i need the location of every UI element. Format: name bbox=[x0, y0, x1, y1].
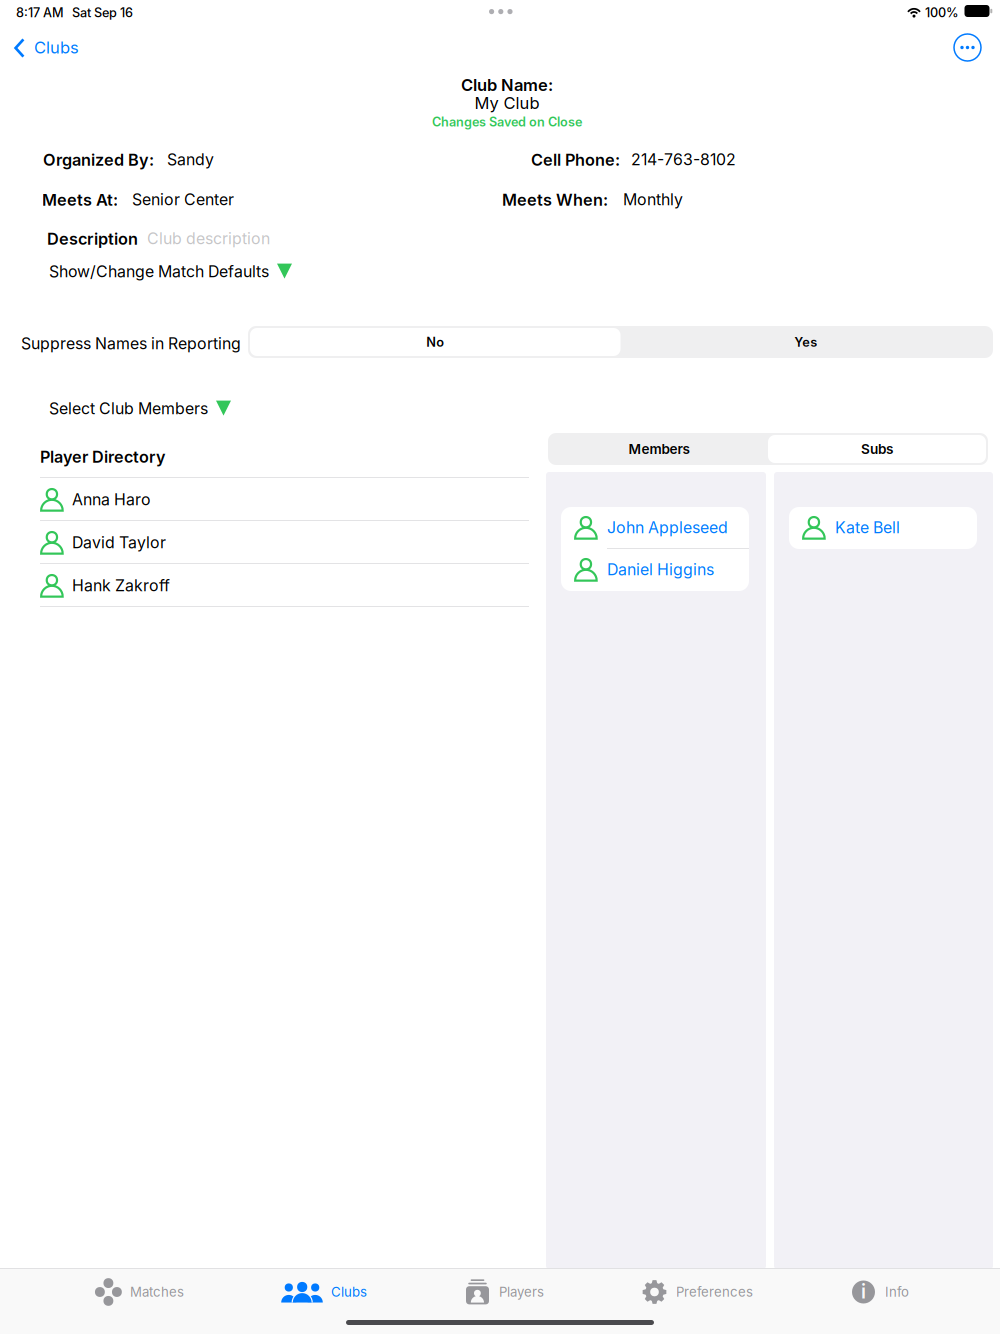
staticText: Player Directory bbox=[40, 447, 165, 466]
staticText: David Taylor bbox=[72, 533, 166, 552]
staticText: Club Name: bbox=[461, 75, 553, 95]
staticText: Show/Change Match Defaults bbox=[49, 262, 269, 281]
button[interactable]: John Appleseed bbox=[561, 507, 749, 549]
button[interactable]: Yes bbox=[620, 326, 991, 358]
staticText: Players bbox=[499, 1284, 544, 1300]
button[interactable]: i bbox=[850, 1274, 909, 1310]
button[interactable]: More options bbox=[953, 33, 982, 62]
staticText: John Appleseed bbox=[607, 518, 728, 537]
button[interactable]: David Taylor bbox=[40, 521, 529, 564]
button[interactable]: Kate Bell bbox=[789, 507, 977, 549]
staticText: Meets When: bbox=[502, 190, 608, 210]
staticText: Daniel Higgins bbox=[607, 560, 714, 579]
staticText: Cell Phone: bbox=[531, 150, 620, 170]
button[interactable]: Matches bbox=[95, 1274, 184, 1310]
staticText: Yes bbox=[794, 334, 817, 350]
staticText: Monthly bbox=[623, 190, 683, 209]
button[interactable]: Preferences bbox=[641, 1274, 753, 1310]
staticText: Clubs bbox=[331, 1284, 367, 1300]
staticText: 214-763-8102 bbox=[631, 150, 736, 169]
staticText: Suppress Names in Reporting bbox=[21, 334, 241, 353]
staticText: Subs bbox=[861, 441, 893, 457]
staticText: Club description bbox=[147, 229, 270, 248]
button[interactable]: Clubs bbox=[7, 33, 86, 63]
staticText: Info bbox=[885, 1284, 909, 1300]
staticText: No bbox=[426, 334, 444, 350]
staticText: Matches bbox=[130, 1284, 184, 1300]
staticText: Kate Bell bbox=[835, 518, 900, 537]
button[interactable]: Daniel Higgins bbox=[561, 549, 749, 591]
staticText: Meets At: bbox=[42, 190, 118, 210]
staticText: Organized By: bbox=[43, 150, 154, 170]
staticText: Hank Zakroff bbox=[72, 576, 170, 595]
staticText: i bbox=[861, 1280, 866, 1303]
staticText: Sat Sep 16 bbox=[72, 5, 133, 20]
button[interactable]: Clubs bbox=[281, 1274, 367, 1310]
staticText: Members bbox=[628, 441, 689, 457]
button[interactable]: Show/Change Match Defaults bbox=[42, 257, 299, 286]
staticText: 100% bbox=[925, 5, 959, 20]
staticText: Anna Haro bbox=[72, 490, 151, 509]
staticText: My Club bbox=[474, 93, 539, 113]
button[interactable]: Hank Zakroff bbox=[40, 564, 529, 607]
staticText: Sandy bbox=[167, 150, 214, 169]
button[interactable]: Players bbox=[464, 1274, 544, 1310]
staticText: Clubs bbox=[34, 37, 79, 57]
staticText: 8:17 AM bbox=[16, 5, 64, 20]
button[interactable]: Subs bbox=[768, 433, 986, 465]
staticText: Select Club Members bbox=[49, 399, 208, 418]
staticText: Preferences bbox=[676, 1284, 753, 1300]
button[interactable]: Anna Haro bbox=[40, 478, 529, 521]
button[interactable]: Members bbox=[550, 433, 768, 465]
staticText: Description bbox=[47, 229, 138, 249]
button[interactable]: No bbox=[250, 326, 620, 358]
staticText: Changes Saved on Close bbox=[432, 114, 582, 130]
button[interactable]: Select Club Members bbox=[42, 394, 238, 423]
staticText: Senior Center bbox=[132, 190, 234, 209]
